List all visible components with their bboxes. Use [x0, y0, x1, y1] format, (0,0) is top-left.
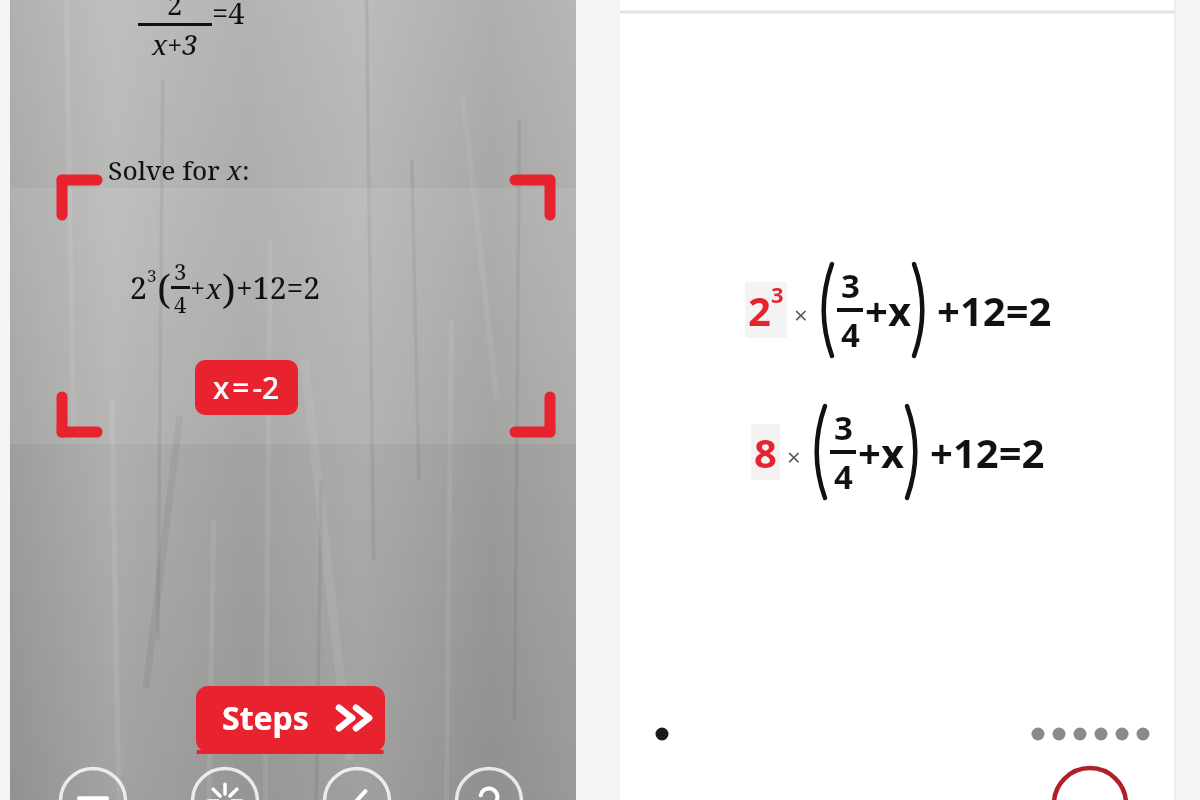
staticText: 4: [841, 312, 860, 357]
staticText: 3: [174, 256, 187, 286]
staticText: 2: [130, 267, 147, 308]
staticText: 4: [834, 454, 853, 499]
staticText: 4: [174, 289, 187, 319]
button[interactable]: x = -2: [195, 360, 298, 415]
staticText: x = -2: [213, 367, 280, 408]
staticText: +12=2: [236, 267, 321, 308]
staticText: :: [242, 152, 250, 187]
staticText: 3: [147, 264, 157, 287]
staticText: ×: [787, 440, 801, 473]
staticText: ): [222, 261, 236, 315]
staticText: Steps: [222, 696, 309, 740]
staticText: x+3: [152, 26, 198, 63]
staticText: 3: [841, 263, 860, 308]
staticText: +12=2: [930, 425, 1045, 479]
staticText: +x: [858, 425, 904, 479]
staticText: 8: [754, 425, 777, 479]
staticText: 3: [834, 405, 853, 450]
button[interactable]: Steps: [196, 686, 385, 752]
staticText: +x: [865, 283, 911, 337]
button[interactable]: Gallery: [58, 766, 128, 800]
staticText: +12=2: [937, 283, 1052, 337]
button[interactable]: Flash: [190, 766, 260, 800]
staticText: 3: [771, 282, 784, 309]
staticText: ×: [794, 298, 808, 331]
button[interactable]: 8: [754, 425, 777, 479]
staticText: (: [157, 261, 171, 315]
button[interactable]: 2: [748, 283, 784, 337]
staticText: 2: [748, 283, 771, 337]
staticText: 2: [167, 0, 183, 23]
button[interactable]: Edit: [322, 766, 392, 800]
staticText: x: [206, 269, 222, 307]
staticText: +: [190, 269, 206, 306]
button[interactable]: Help: [454, 766, 524, 800]
staticText: =4: [212, 0, 245, 32]
staticText: Solve for: [108, 152, 227, 187]
staticText: x: [227, 152, 242, 187]
